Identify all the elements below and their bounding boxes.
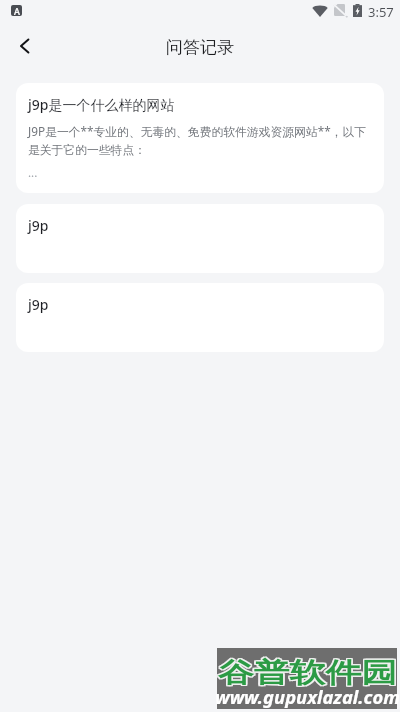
staticText: J9P是一个**专业的、无毒的、免费的软件游戏资源网站**，以下是关于它的一些特… [28, 123, 372, 158]
staticText: ... [28, 165, 38, 181]
staticText: j9p [28, 216, 49, 235]
staticText: 谷普软件园 [216, 656, 396, 690]
button[interactable]: Back [4, 26, 46, 68]
staticText: 谷普软件园 [218, 657, 397, 691]
staticText: 3:57 [368, 3, 394, 21]
button[interactable]: j9p是一个什么样的网站 [16, 83, 384, 193]
button[interactable]: j9p [16, 204, 384, 273]
staticText: 谷普软件园 [219, 656, 399, 690]
staticText: 谷普软件园 [218, 655, 397, 689]
staticText: 问答记录 [166, 37, 234, 58]
staticText: j9p是一个什么样的网站 [28, 95, 175, 114]
staticText: 谷普软件园 [216, 657, 396, 691]
staticText: 谷普软件园 [218, 656, 397, 690]
staticText: 谷普软件园 [219, 657, 399, 691]
staticText: 谷普软件园 [219, 655, 399, 689]
staticText: www.gupuxlazal.com [215, 686, 400, 709]
button[interactable]: j9p [16, 283, 384, 352]
staticText: A [14, 5, 20, 16]
staticText: 谷普软件园 [216, 655, 396, 689]
staticText: j9p [28, 295, 49, 314]
